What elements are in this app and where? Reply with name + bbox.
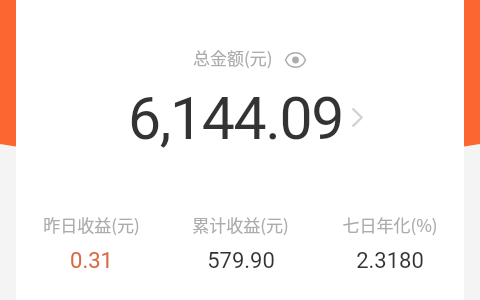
staticText: 2.3180 — [356, 248, 424, 274]
staticText: 579.90 — [207, 248, 275, 274]
button[interactable]: 昨日收益(元) — [16, 212, 166, 274]
staticText: 七日年化(%) — [342, 212, 438, 237]
staticText: 累计收益(元) — [192, 212, 289, 237]
staticText: 昨日收益(元) — [43, 212, 140, 237]
staticText: 6,144.09 — [128, 84, 343, 153]
staticText: 总金额(元) — [193, 45, 273, 70]
button[interactable]: 累计收益(元) — [166, 212, 315, 274]
button[interactable]: Open balance details — [347, 104, 367, 130]
button[interactable]: 七日年化(%) — [315, 212, 464, 274]
button[interactable]: 总金额(元) — [193, 45, 307, 70]
other: Toggle amount visibility — [284, 51, 307, 69]
staticText: 0.31 — [70, 248, 113, 274]
